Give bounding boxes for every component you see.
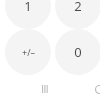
staticText: 2 [74,0,82,15]
staticText: 1 [24,0,32,15]
button[interactable]: Recents [35,78,57,100]
staticText: +/– [22,46,35,58]
button[interactable]: 2 [55,0,100,29]
button[interactable]: 0 [55,29,100,75]
button[interactable]: Home [88,78,100,100]
staticText: 0 [74,43,82,61]
button[interactable]: +/– [5,29,51,75]
button[interactable]: 1 [5,0,51,29]
